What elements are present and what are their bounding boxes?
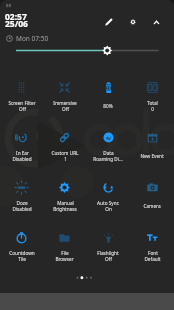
staticText: Doze xyxy=(16,200,28,206)
staticText: Mon 07:50 xyxy=(16,34,49,43)
button[interactable]: Collapse xyxy=(146,12,166,32)
button[interactable]: Font xyxy=(130,212,174,262)
staticText: Data xyxy=(103,150,114,156)
staticText: 1 xyxy=(64,156,67,162)
staticText: File xyxy=(61,250,69,256)
staticText: Custom URL xyxy=(51,150,79,156)
staticText: Tile xyxy=(18,256,26,262)
staticText: 0 xyxy=(151,106,154,112)
staticText: Off xyxy=(62,106,69,112)
staticText: Roaming Di... xyxy=(93,156,123,162)
button[interactable]: Auto Sync xyxy=(86,162,130,212)
button[interactable]: Edit xyxy=(99,12,119,32)
button[interactable]: Total xyxy=(130,62,174,112)
button[interactable]: Manual xyxy=(43,162,86,212)
staticText: Font xyxy=(148,250,158,256)
button[interactable]: Flashlight xyxy=(86,212,130,262)
staticText: Screen Filter xyxy=(8,100,36,106)
staticText: Total xyxy=(147,100,158,106)
staticText: New Event xyxy=(140,153,164,159)
button[interactable]: Doze xyxy=(0,162,43,212)
button[interactable]: In Ear xyxy=(0,112,43,162)
staticText: Manual xyxy=(57,200,74,206)
button[interactable]: Screen Filter xyxy=(0,62,43,112)
button[interactable]: 80% xyxy=(86,62,130,112)
staticText: Flashlight xyxy=(97,250,119,256)
staticText: 80% xyxy=(103,103,113,109)
staticText: Browser xyxy=(55,256,74,262)
staticText: 02:57 xyxy=(5,11,27,23)
button[interactable]: Brightness xyxy=(0,44,174,62)
staticText: Disabled xyxy=(12,206,32,212)
button[interactable]: Custom URL xyxy=(43,112,86,162)
staticText: 25/06 xyxy=(5,18,28,30)
button[interactable]: Settings xyxy=(123,12,143,32)
staticText: Countdown xyxy=(9,250,35,256)
button[interactable]: Data xyxy=(86,112,130,162)
staticText: In Ear xyxy=(16,150,29,156)
staticText: Brightness xyxy=(53,206,77,212)
staticText: Off xyxy=(105,256,112,262)
staticText: Off xyxy=(19,106,26,112)
staticText: Immersive xyxy=(53,100,77,106)
button[interactable]: New Event xyxy=(130,112,174,162)
button[interactable]: Immersive xyxy=(43,62,86,112)
staticText: Default xyxy=(144,256,161,262)
staticText: On xyxy=(105,206,112,212)
staticText: Camera xyxy=(143,203,161,209)
staticText: Disabled xyxy=(12,156,32,162)
staticText: Auto Sync xyxy=(97,200,119,206)
button[interactable]: File xyxy=(43,212,86,262)
button[interactable]: Camera xyxy=(130,162,174,212)
button[interactable]: Countdown xyxy=(0,212,43,262)
